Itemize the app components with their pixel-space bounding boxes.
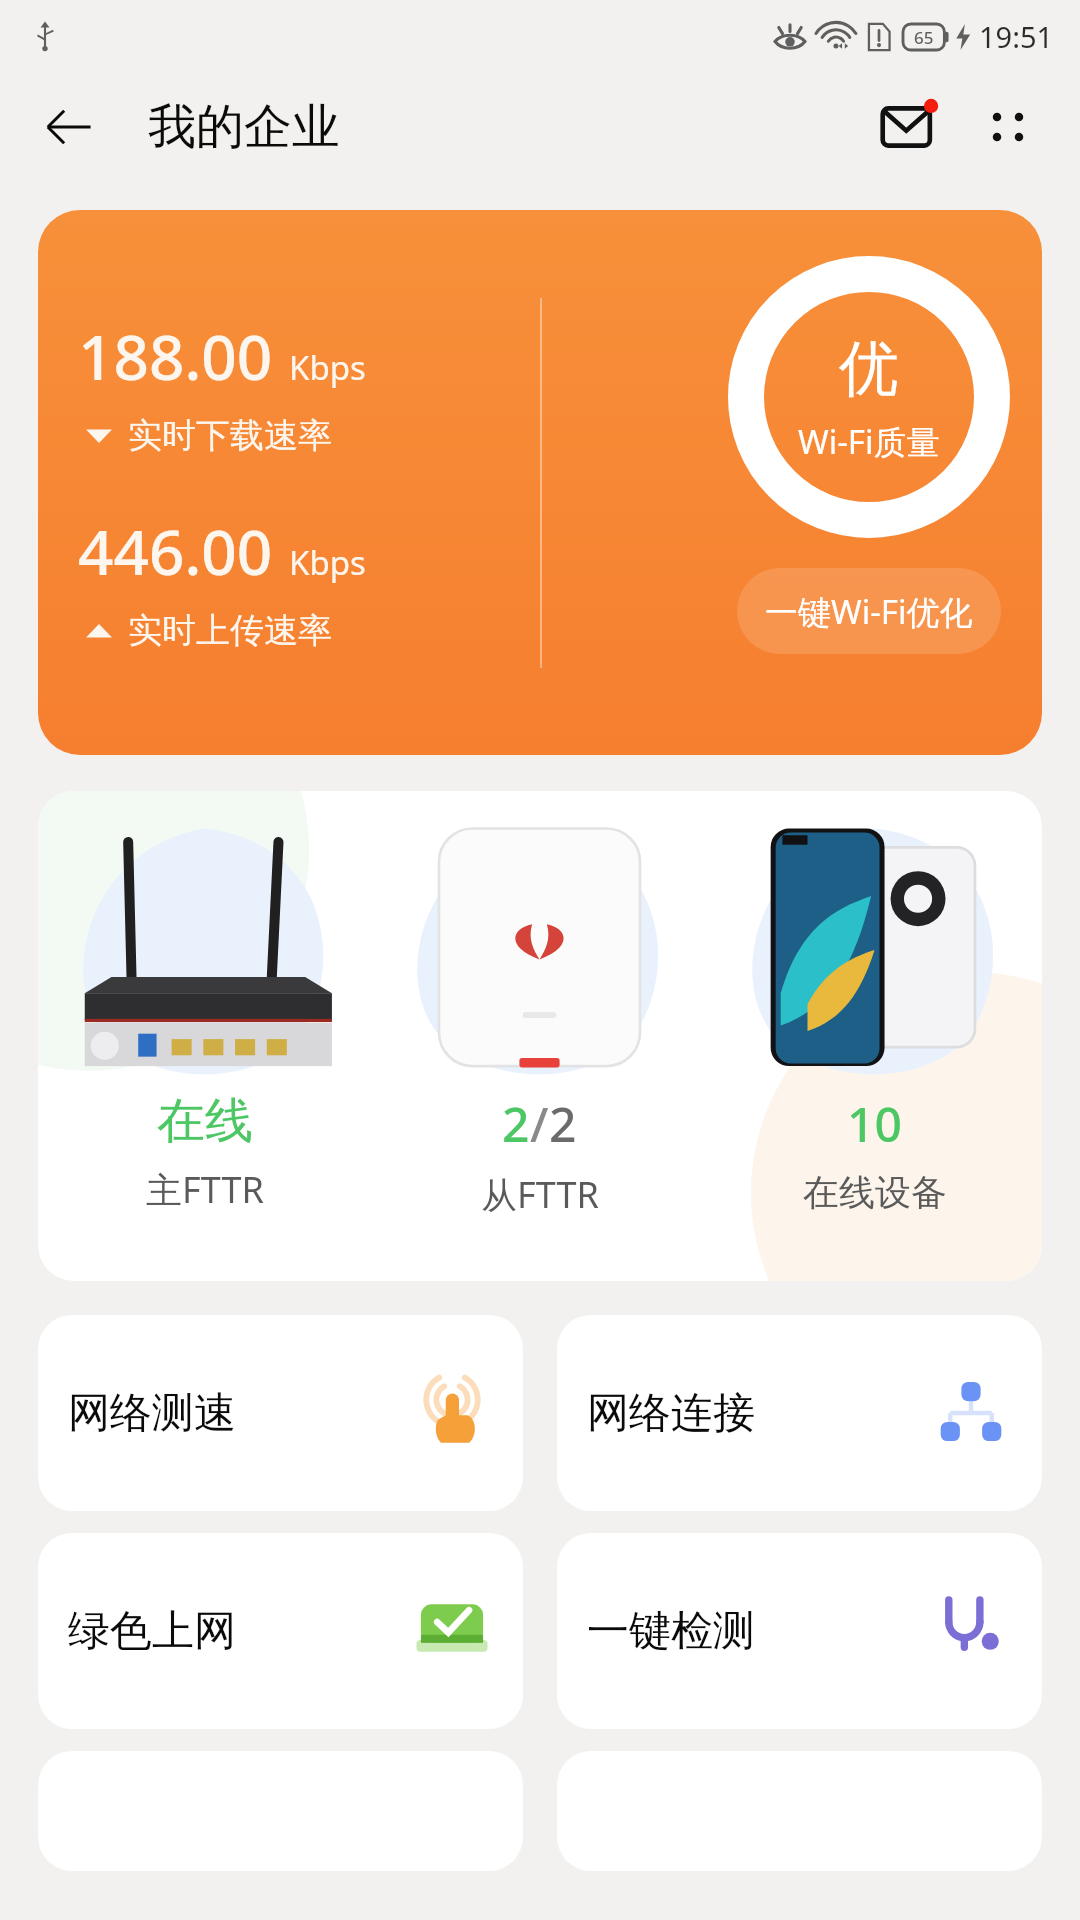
button[interactable]: 绿色上网 <box>38 1533 523 1729</box>
staticText: 446.00 <box>78 509 273 593</box>
button[interactable]: 在线 <box>38 791 1042 1281</box>
staticText: 实时上传速率 <box>128 609 332 652</box>
button[interactable]: Back <box>34 93 102 161</box>
button[interactable]: 网络测速 <box>38 1315 523 1511</box>
button[interactable]: 一键检测 <box>557 1533 1042 1729</box>
staticText: 2 <box>502 1091 530 1156</box>
staticText: 网络连接 <box>587 1387 755 1440</box>
staticText: Wi-Fi质量 <box>798 419 940 464</box>
staticText: 一键Wi-Fi优化 <box>765 589 973 634</box>
staticText: 绿色上网 <box>68 1605 236 1658</box>
staticText: / <box>530 1091 549 1156</box>
staticText: Kbps <box>289 540 366 585</box>
staticText: Kbps <box>289 345 366 390</box>
staticText: 65 <box>914 26 934 49</box>
staticText: 我的企业 <box>148 97 340 157</box>
staticText: 从FTTR <box>481 1170 599 1219</box>
button[interactable]: 网络连接 <box>557 1315 1042 1511</box>
button[interactable]: More options <box>966 85 1050 169</box>
staticText: 2 <box>549 1091 577 1156</box>
button[interactable]: 一键Wi-Fi优化 <box>737 568 1001 654</box>
button[interactable]: Messages <box>868 85 952 169</box>
staticText: 主FTTR <box>146 1165 264 1214</box>
staticText: 网络测速 <box>68 1387 236 1440</box>
staticText: 一键检测 <box>587 1605 755 1658</box>
staticText: 19:51 <box>979 17 1054 56</box>
button[interactable]: 188.00 <box>38 210 1042 755</box>
staticText: 在线设备 <box>803 1170 947 1215</box>
staticText: 实时下载速率 <box>128 414 332 457</box>
button[interactable]: 2 <box>372 791 707 1281</box>
button[interactable]: 10 <box>707 791 1042 1281</box>
staticText: 在线 <box>157 1091 253 1151</box>
button[interactable]: 在线 <box>38 791 372 1281</box>
staticText: 10 <box>847 1091 902 1156</box>
staticText: 优 <box>839 331 899 407</box>
staticText: 188.00 <box>78 314 273 398</box>
